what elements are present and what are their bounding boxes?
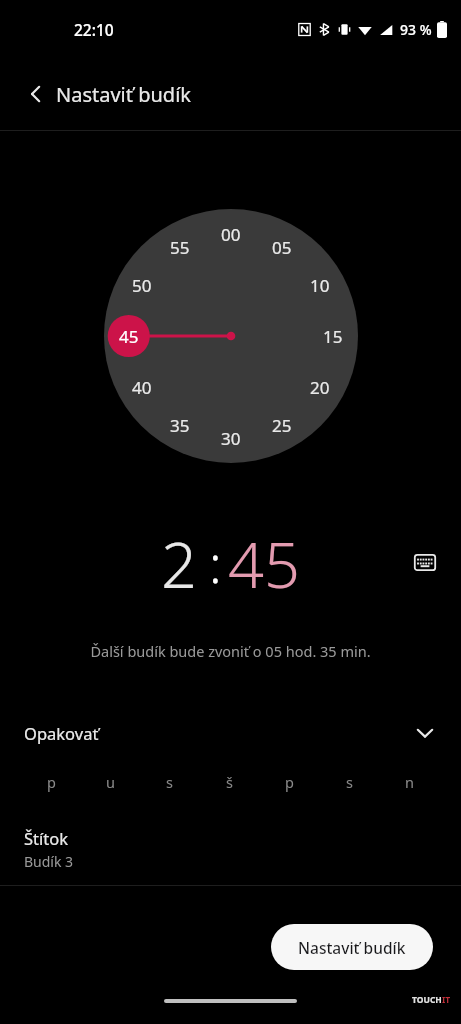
staticText: 22:10 [74, 19, 114, 40]
staticText: IT [442, 994, 451, 1006]
button[interactable]: Štítok [0, 819, 461, 885]
staticText: TOUCH [412, 994, 442, 1006]
staticText: 10 [310, 274, 330, 297]
staticText: 2 [161, 521, 197, 603]
staticText: 45 [228, 521, 300, 603]
staticText: 35 [170, 414, 190, 437]
button[interactable]: 45 [228, 521, 300, 603]
button[interactable]: s [140, 767, 199, 797]
button[interactable]: p [22, 767, 81, 797]
staticText: : [209, 527, 222, 598]
staticText: 45 [119, 325, 139, 348]
button[interactable]: s [319, 767, 379, 797]
staticText: Opakovať [24, 722, 99, 744]
button[interactable]: Switch to keyboard input [403, 540, 447, 584]
staticText: p [47, 772, 56, 792]
button[interactable]: p [259, 767, 319, 797]
button[interactable]: Minute picker [104, 209, 358, 463]
staticText: 20 [310, 376, 330, 399]
staticText: p [285, 772, 294, 792]
button[interactable]: u [81, 767, 140, 797]
staticText: s [346, 772, 353, 792]
button[interactable]: Opakovať [0, 711, 461, 755]
staticText: 30 [221, 427, 241, 450]
staticText: 40 [132, 376, 152, 399]
button[interactable]: Nastaviť budík [271, 924, 433, 970]
button[interactable]: š [199, 767, 259, 797]
staticText: s [166, 772, 173, 792]
staticText: 50 [132, 274, 152, 297]
button[interactable]: Back [14, 72, 58, 116]
staticText: 05 [272, 236, 292, 259]
staticText: 00 [221, 223, 241, 246]
staticText: 15 [323, 325, 343, 348]
staticText: 25 [272, 414, 292, 437]
button[interactable]: n [379, 767, 439, 797]
staticText: š [226, 772, 233, 792]
button[interactable]: 2 [161, 521, 197, 603]
staticText: n [405, 772, 414, 792]
staticText: Nastaviť budík [298, 937, 406, 958]
staticText: Ďalší budík bude zvoniť o 05 hod. 35 min… [0, 641, 461, 661]
staticText: u [106, 772, 115, 792]
staticText: 93 % [400, 20, 432, 39]
staticText: Budík 3 [24, 852, 74, 871]
staticText: Štítok [24, 827, 69, 849]
staticText: 55 [170, 236, 190, 259]
staticText: Nastaviť budík [56, 81, 191, 108]
